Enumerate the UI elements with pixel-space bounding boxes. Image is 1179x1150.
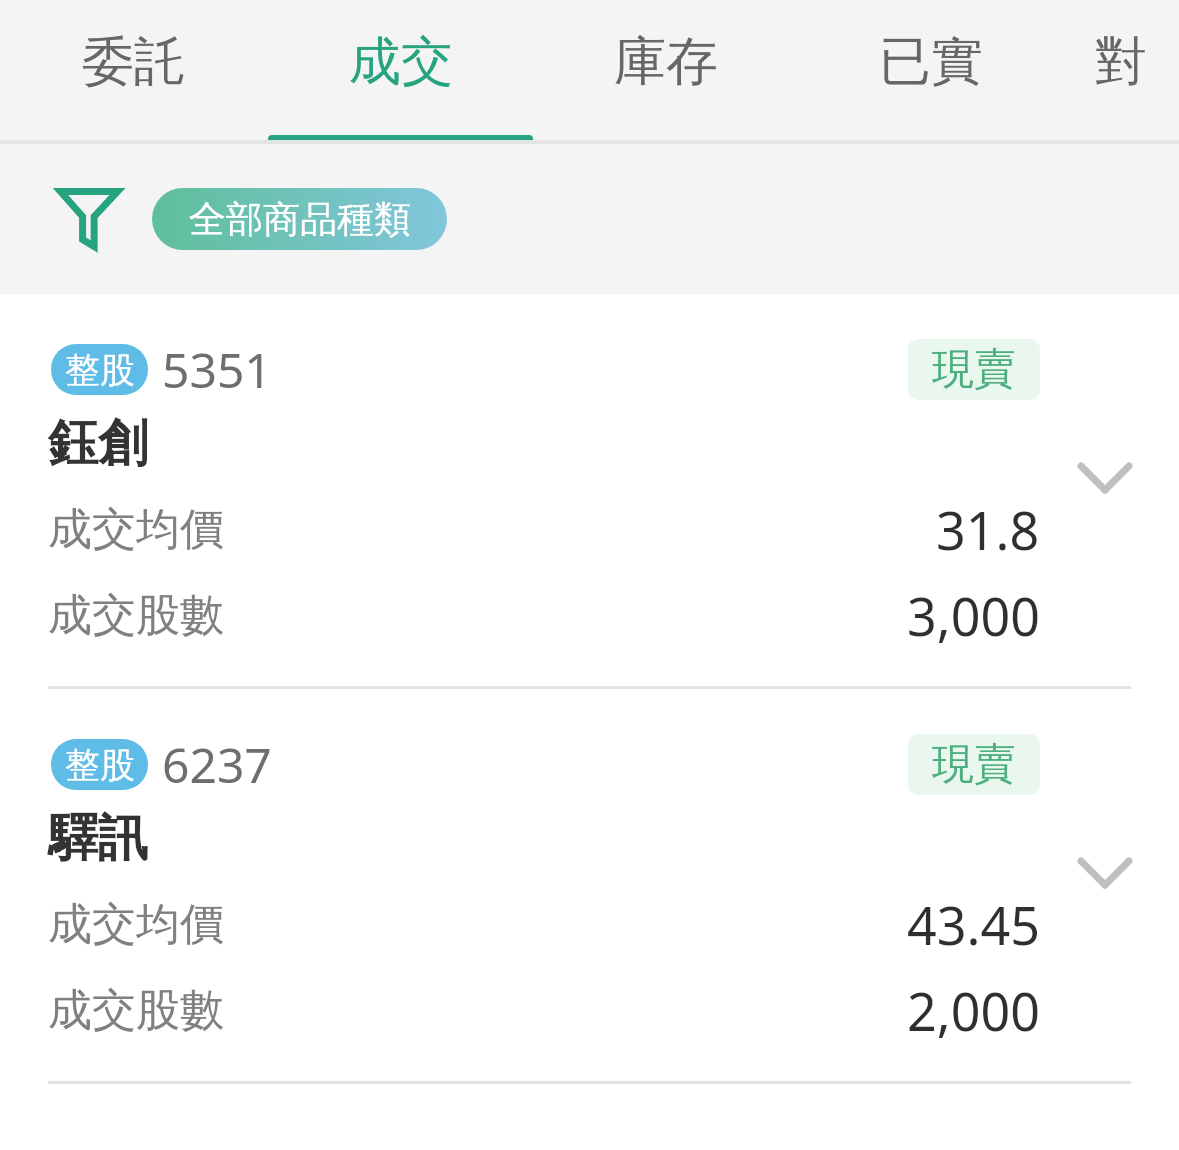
staticText: 6237 bbox=[162, 732, 272, 797]
staticText: 3,000 bbox=[907, 580, 1040, 651]
staticText: 已實 bbox=[879, 29, 983, 95]
button[interactable]: 全部商品種類 bbox=[152, 188, 447, 250]
staticText: 5351 bbox=[162, 337, 272, 402]
staticText: 對 bbox=[1095, 29, 1147, 95]
staticText: 驛訊 bbox=[48, 807, 148, 870]
button[interactable]: Expand bbox=[1072, 452, 1138, 504]
staticText: 成交股數 bbox=[48, 983, 224, 1038]
staticText: 現賣 bbox=[932, 343, 1016, 396]
staticText: 31.8 bbox=[936, 494, 1040, 565]
button[interactable]: 庫存 bbox=[533, 0, 798, 144]
staticText: 全部商品種類 bbox=[189, 196, 411, 243]
staticText: 整股 bbox=[65, 348, 135, 392]
button[interactable]: Filter bbox=[44, 180, 134, 258]
staticText: 鈺創 bbox=[48, 412, 148, 475]
button[interactable]: 對 bbox=[1063, 0, 1179, 144]
staticText: 2,000 bbox=[907, 975, 1040, 1046]
button[interactable]: Expand bbox=[1072, 847, 1138, 899]
staticText: 委託 bbox=[82, 29, 186, 95]
staticText: 成交均價 bbox=[48, 502, 224, 557]
staticText: 成交股數 bbox=[48, 588, 224, 643]
staticText: 43.45 bbox=[907, 889, 1040, 960]
staticText: 庫存 bbox=[614, 29, 718, 95]
button[interactable]: 整股 bbox=[0, 689, 1179, 1081]
button[interactable]: 成交 bbox=[268, 0, 533, 144]
button[interactable]: 整股 bbox=[0, 294, 1179, 686]
button[interactable]: 已實 bbox=[798, 0, 1063, 144]
staticText: 整股 bbox=[65, 743, 135, 787]
staticText: 成交 bbox=[349, 29, 453, 95]
button[interactable]: 委託 bbox=[0, 0, 268, 144]
staticText: 成交均價 bbox=[48, 897, 224, 952]
staticText: 現賣 bbox=[932, 738, 1016, 791]
